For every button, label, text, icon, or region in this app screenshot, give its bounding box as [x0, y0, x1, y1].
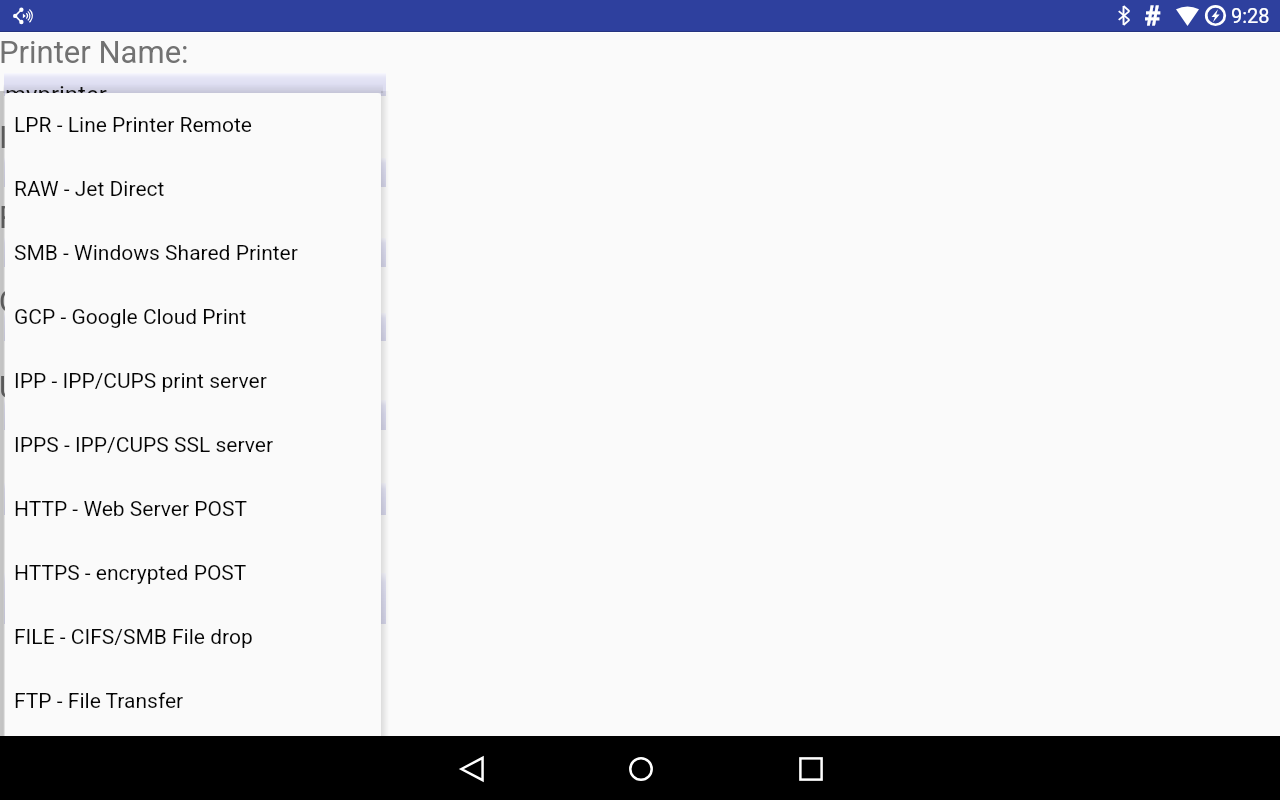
- button[interactable]: [4, 158, 386, 187]
- button[interactable]: RAW - Jet Direct: [5, 157, 381, 221]
- staticText: Password:: [9, 451, 154, 487]
- button[interactable]: myprinter: [4, 73, 386, 96]
- button[interactable]: SMB - Windows Shared Printer: [5, 221, 381, 285]
- button[interactable]: Recent apps: [783, 741, 839, 797]
- staticText: LPR - Line Printer Remote: [14, 113, 252, 138]
- button[interactable]: IPPS - IPP/CUPS SSL server: [5, 413, 381, 477]
- staticText: IPP - IPP/CUPS print server: [14, 369, 267, 394]
- staticText: GCP - Google Cloud Print: [14, 305, 247, 330]
- button[interactable]: Home: [613, 741, 669, 797]
- button[interactable]: FILE - CIFS/SMB File drop: [5, 605, 381, 669]
- staticText: User:: [0, 369, 70, 405]
- button[interactable]: LPR - Line Printer Remote: [5, 93, 381, 157]
- staticText: IPPS - IPP/CUPS SSL server: [14, 433, 274, 458]
- staticText: RAW - Jet Direct: [14, 177, 165, 202]
- button[interactable]: HTTPS - encrypted POST: [5, 541, 381, 605]
- staticText: HTTPS - encrypted POST: [14, 561, 247, 586]
- staticText: HTTP - Web Server POST: [14, 497, 247, 522]
- button[interactable]: [4, 238, 386, 267]
- other: Cast screen: [13, 6, 35, 25]
- button[interactable]: FTP - File Transfer: [5, 669, 381, 733]
- button[interactable]: [4, 400, 386, 430]
- staticText: 9:28: [1231, 4, 1270, 27]
- staticText: #: [1144, 1, 1161, 31]
- staticText: myprinter: [5, 81, 107, 104]
- staticText: FILE - CIFS/SMB File drop: [14, 625, 253, 650]
- button[interactable]: GCP - Google Cloud Print: [5, 285, 381, 349]
- staticText: FTP - File Transfer: [14, 689, 184, 714]
- button[interactable]: Back: [444, 741, 500, 797]
- staticText: Notes:: [9, 541, 99, 577]
- staticText: Port:: [0, 199, 65, 235]
- button[interactable]: IPP - IPP/CUPS print server: [5, 349, 381, 413]
- button[interactable]: [4, 313, 386, 341]
- staticText: Queue:: [0, 283, 95, 319]
- button[interactable]: [4, 483, 386, 515]
- staticText: Printer Name:: [0, 34, 189, 70]
- staticText: SMB - Windows Shared Printer: [14, 241, 298, 266]
- button[interactable]: [4, 573, 386, 624]
- staticText: IP Address:: [0, 119, 157, 155]
- button[interactable]: HTTP - Web Server POST: [5, 477, 381, 541]
